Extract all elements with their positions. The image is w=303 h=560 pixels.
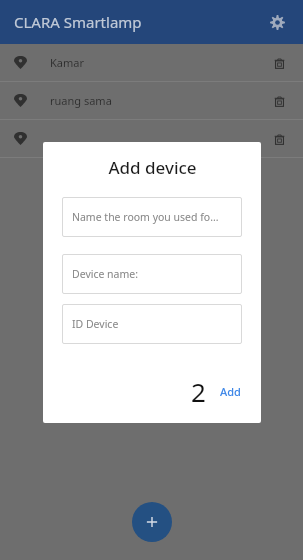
staticText: Add device: [108, 156, 197, 179]
button[interactable]: Delete ruang sama: [267, 89, 291, 113]
button[interactable]: Delete: [267, 127, 291, 151]
staticText: CLARA Smartlamp: [14, 12, 142, 32]
button[interactable]: Add device: [132, 502, 172, 542]
staticText: ID Device: [72, 317, 119, 331]
button[interactable]: Add: [218, 380, 243, 403]
staticText: Device name:: [72, 267, 139, 281]
staticText: 2: [191, 374, 206, 409]
button[interactable]: ID Device: [62, 304, 242, 344]
button[interactable]: Settings: [261, 6, 293, 38]
staticText: Name the room you used fo…: [72, 210, 219, 224]
button[interactable]: ruang sama: [0, 82, 303, 119]
button[interactable]: Delete: [0, 120, 303, 157]
staticText: ruang sama: [50, 93, 112, 108]
button[interactable]: Kamar: [0, 44, 303, 81]
button[interactable]: Delete Kamar: [267, 51, 291, 75]
staticText: Kamar: [50, 55, 84, 70]
button[interactable]: Name the room you used fo…: [62, 197, 242, 237]
staticText: Add: [220, 384, 241, 399]
button[interactable]: Device name:: [62, 254, 242, 294]
